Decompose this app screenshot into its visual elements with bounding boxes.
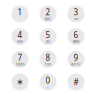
- staticText: 4: [17, 30, 22, 40]
- staticText: 3: [73, 7, 78, 17]
- button[interactable]: 9: [67, 51, 84, 68]
- staticText: PQRS: [16, 63, 24, 66]
- staticText: JKL: [46, 40, 50, 44]
- staticText: ABC: [45, 17, 51, 21]
- staticText: 7: [17, 52, 22, 63]
- button[interactable]: 6: [67, 28, 84, 45]
- staticText: WXYZ: [71, 63, 81, 66]
- staticText: TUV: [45, 63, 51, 66]
- button[interactable]: 4: [11, 28, 28, 45]
- staticText: 1: [17, 7, 22, 17]
- button[interactable]: 7: [11, 51, 28, 68]
- staticText: 6: [73, 30, 78, 40]
- staticText: 2: [45, 7, 50, 17]
- staticText: +: [47, 86, 49, 89]
- button[interactable]: 8: [39, 51, 56, 68]
- button[interactable]: 3: [67, 5, 84, 22]
- staticText: DEF: [74, 17, 78, 21]
- button[interactable]: 2: [39, 5, 56, 22]
- button[interactable]: 1: [11, 5, 28, 22]
- staticText: 8: [45, 52, 50, 63]
- staticText: 0: [45, 75, 50, 86]
- staticText: MNO: [73, 40, 79, 44]
- button[interactable]: #: [67, 73, 84, 90]
- button[interactable]: 5: [39, 28, 56, 45]
- button[interactable]: 0: [39, 73, 56, 90]
- staticText: 9: [73, 52, 78, 63]
- button[interactable]: Star: [11, 73, 28, 90]
- staticText: #: [73, 77, 78, 87]
- staticText: GHI: [17, 40, 23, 44]
- staticText: 5: [45, 30, 50, 40]
